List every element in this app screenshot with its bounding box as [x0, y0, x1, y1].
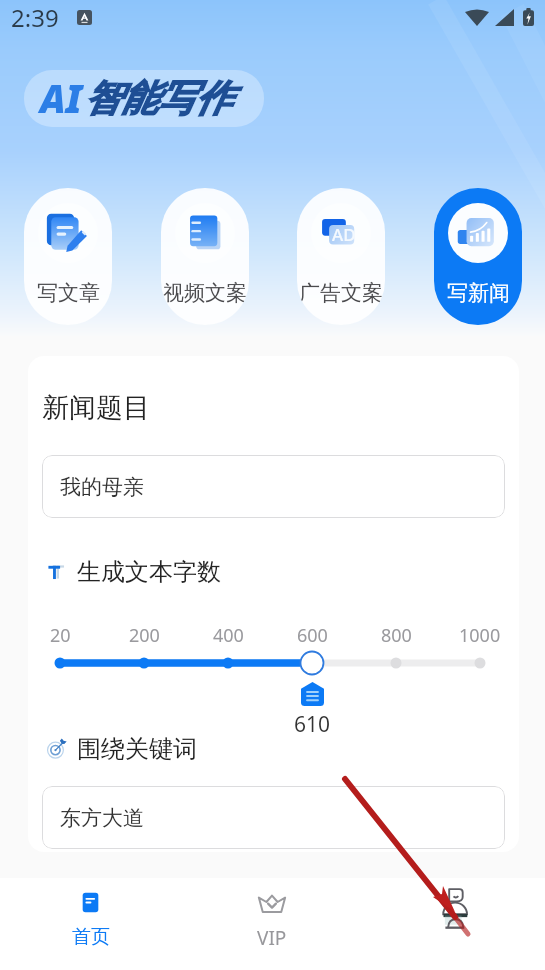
staticText: AD	[332, 223, 356, 246]
button[interactable]: AD	[297, 188, 385, 325]
button[interactable]: 东方大道	[42, 786, 505, 849]
staticText: 智能写作	[84, 75, 232, 122]
button[interactable]: 写新闻	[434, 188, 522, 325]
staticText: 写新闻	[447, 280, 510, 306]
staticText: VIP	[257, 925, 287, 951]
staticText: 600	[297, 623, 328, 648]
button[interactable]: 视频文案	[161, 188, 249, 325]
staticText: 视频文案	[163, 280, 247, 306]
staticText: 生成文本字数	[77, 557, 221, 587]
button[interactable]: 写文章	[24, 188, 112, 325]
staticText: 首页	[72, 925, 110, 949]
button[interactable]: 我的	[363, 878, 545, 970]
staticText: AI	[40, 72, 82, 124]
button[interactable]: 首页	[0, 878, 181, 970]
staticText: 我的母亲	[60, 474, 144, 500]
staticText: 400	[213, 623, 244, 648]
staticText: 围绕关键词	[77, 734, 197, 764]
staticText: 1000	[459, 623, 501, 648]
staticText: 东方大道	[60, 805, 144, 831]
staticText: 200	[129, 623, 160, 648]
staticText: 广告文案	[299, 280, 383, 306]
staticText: 新闻题目	[42, 391, 150, 425]
button[interactable]: AI	[24, 70, 264, 127]
button[interactable]: 我的母亲	[42, 455, 505, 518]
staticText: 610	[294, 710, 331, 739]
button[interactable]: VIP	[181, 878, 363, 970]
staticText: 写文章	[37, 280, 100, 306]
staticText: 2:39	[11, 1, 59, 34]
staticText: 20	[50, 623, 71, 648]
staticText: 800	[381, 623, 412, 648]
